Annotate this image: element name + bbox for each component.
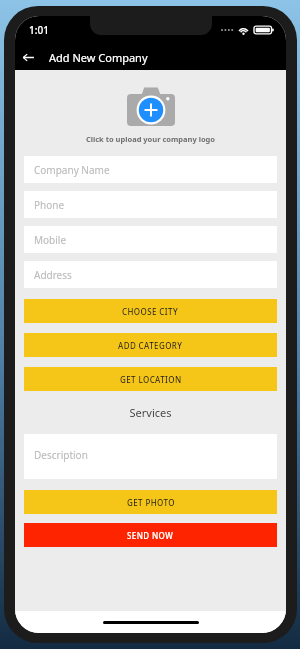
staticText: GET PHOTO — [127, 497, 175, 508]
staticText: Description — [34, 448, 88, 462]
staticText: Services — [24, 405, 277, 420]
button[interactable]: ADD CATEGORY — [24, 333, 277, 357]
staticText: Phone — [34, 198, 65, 212]
button[interactable]: GET LOCATION — [24, 367, 277, 391]
staticText: Click to upload your company logo — [24, 134, 277, 144]
staticText: Company Name — [34, 163, 110, 177]
staticText: Add New Company — [49, 50, 148, 65]
staticText: GET LOCATION — [120, 374, 182, 385]
button[interactable]: Description — [24, 434, 277, 479]
button[interactable]: Company Name — [24, 156, 277, 183]
button[interactable]: Back — [15, 44, 41, 70]
staticText: ADD CATEGORY — [118, 340, 183, 351]
button[interactable]: GET PHOTO — [24, 490, 277, 514]
button[interactable]: Phone — [24, 191, 277, 218]
staticText: Address — [34, 268, 72, 282]
staticText: 1:01 — [29, 23, 49, 37]
staticText: CHOOSE CITY — [122, 306, 179, 317]
staticText: Mobile — [34, 233, 67, 247]
button[interactable]: CHOOSE CITY — [24, 299, 277, 323]
button[interactable]: SEND NOW — [24, 523, 277, 547]
staticText: SEND NOW — [127, 530, 174, 541]
button[interactable]: Mobile — [24, 226, 277, 253]
button[interactable]: Address — [24, 261, 277, 288]
button[interactable]: Upload company logo — [24, 84, 277, 128]
